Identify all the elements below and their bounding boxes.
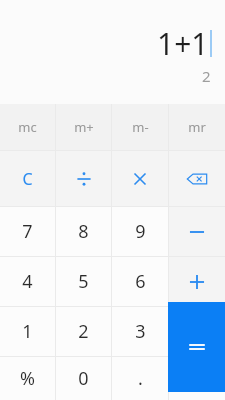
button[interactable]: Backspace [169, 151, 225, 206]
button[interactable]: mc [0, 104, 55, 150]
staticText: 2 [202, 66, 211, 86]
button[interactable]: m+ [56, 104, 111, 150]
staticText: 1 [22, 319, 33, 344]
button[interactable]: 5 [56, 257, 111, 306]
button[interactable]: 4 [0, 257, 55, 306]
button[interactable]: 6 [112, 257, 168, 306]
button[interactable]: Equals [168, 302, 225, 392]
staticText: 6 [135, 269, 146, 294]
button[interactable]: 3 [112, 307, 168, 356]
button[interactable]: 2 [56, 307, 111, 356]
button[interactable]: 0 [56, 357, 111, 400]
staticText: m- [132, 118, 149, 136]
staticText: mc [18, 118, 37, 136]
staticText: mr [188, 118, 206, 136]
button[interactable]: m- [112, 104, 168, 150]
staticText: 1+1 [157, 23, 209, 64]
staticText: 5 [78, 269, 89, 294]
staticText: 7 [22, 219, 33, 244]
button[interactable]: 7 [0, 207, 55, 256]
staticText: . [138, 366, 143, 391]
button[interactable]: Multiply [112, 151, 168, 206]
staticText: 9 [135, 219, 146, 244]
button[interactable]: 1 [0, 307, 55, 356]
button[interactable]: . [112, 357, 168, 400]
button[interactable]: mr [169, 104, 225, 150]
staticText: m+ [74, 118, 94, 136]
staticText: 2 [78, 319, 89, 344]
button[interactable]: 9 [112, 207, 168, 256]
staticText: 4 [22, 269, 33, 294]
staticText: 3 [135, 319, 146, 344]
staticText: C [22, 168, 33, 190]
button[interactable]: Divide [56, 151, 111, 206]
button[interactable]: 8 [56, 207, 111, 256]
button[interactable]: Minus [169, 207, 225, 256]
staticText: 0 [78, 366, 89, 391]
staticText: % [20, 366, 35, 391]
button[interactable]: C [0, 151, 55, 206]
button[interactable]: Plus [169, 257, 225, 306]
staticText: 8 [78, 219, 89, 244]
button[interactable]: % [0, 357, 55, 400]
